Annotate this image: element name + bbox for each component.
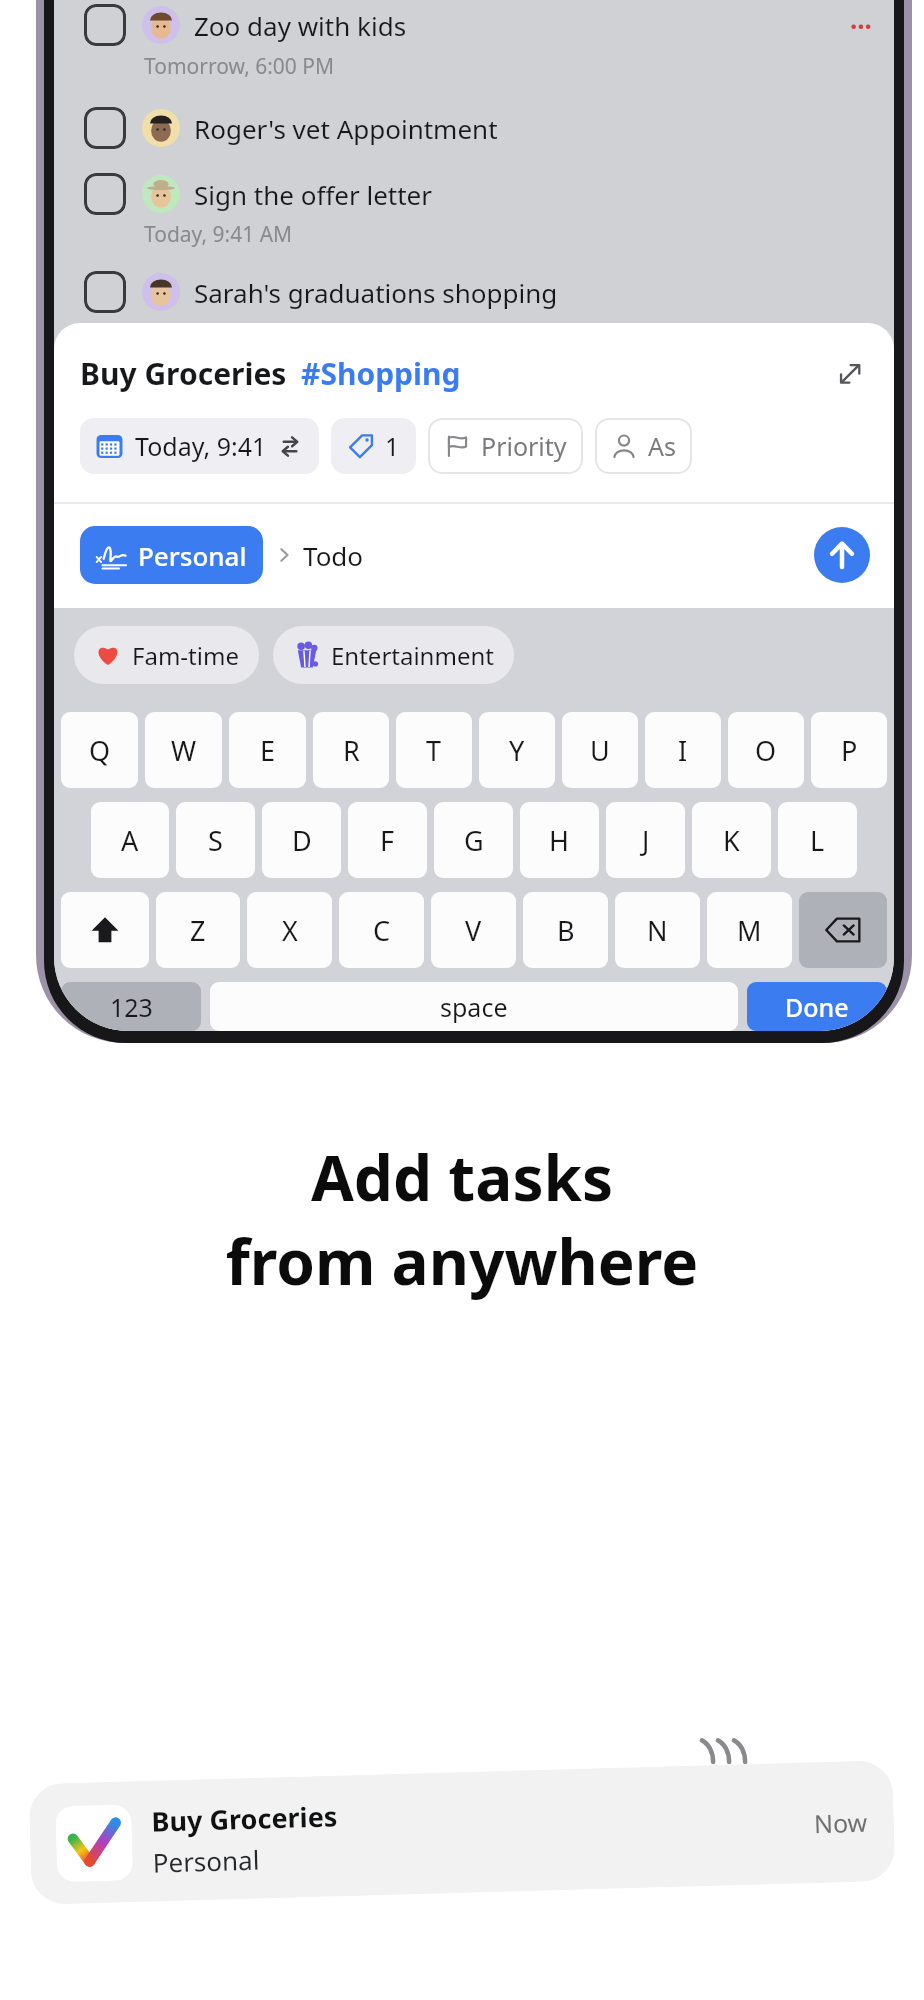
staticText: Sarah's graduations shopping — [194, 275, 558, 310]
staticText: 1 — [385, 429, 400, 463]
staticText: O — [755, 732, 777, 769]
button[interactable]: Expand — [830, 354, 870, 394]
button[interactable]: M — [707, 892, 792, 968]
staticText: Roger's vet Appointment — [194, 111, 872, 146]
staticText: Done — [785, 990, 849, 1024]
staticText: Add tasks from anywhere — [0, 1135, 924, 1303]
button[interactable]: B — [523, 892, 608, 968]
button[interactable]: A — [91, 802, 169, 878]
button[interactable]: C — [339, 892, 424, 968]
button[interactable]: Backspace — [799, 892, 887, 968]
staticText: Personal — [138, 538, 247, 573]
staticText: Todo — [303, 538, 364, 573]
staticText: T — [426, 732, 442, 769]
button[interactable]: Add task — [814, 527, 870, 583]
staticText: D — [292, 822, 312, 859]
button[interactable]: T — [396, 712, 472, 788]
button[interactable]: Shift — [61, 892, 149, 968]
button[interactable]: G — [434, 802, 513, 878]
button[interactable]: Complete Roger's vet Appointment — [54, 107, 894, 149]
button[interactable]: Buy Groceries — [28, 1760, 895, 1905]
button[interactable]: S — [176, 802, 255, 878]
staticText: H — [549, 822, 570, 859]
staticText: Zoo day with kids — [194, 8, 850, 43]
button[interactable]: U — [562, 712, 638, 788]
button[interactable]: P — [811, 712, 887, 788]
staticText: G — [464, 822, 484, 859]
staticText: C — [373, 912, 391, 949]
staticText: A — [121, 822, 139, 859]
button[interactable]: K — [692, 802, 771, 878]
button[interactable]: Z — [156, 892, 240, 968]
staticText: Q — [89, 732, 111, 769]
button[interactable]: Complete Sarah's graduations shopping — [84, 271, 126, 313]
staticText: E — [260, 732, 276, 769]
button[interactable]: R — [313, 712, 389, 788]
button[interactable]: Priority — [428, 418, 583, 474]
button[interactable]: Personal — [80, 526, 263, 584]
staticText: Buy Groceries — [151, 1797, 338, 1840]
staticText: Now — [813, 1805, 868, 1840]
button[interactable]: Complete Roger's vet Appointment — [84, 107, 126, 149]
button[interactable]: 1 — [331, 418, 416, 474]
staticText: space — [440, 990, 508, 1024]
staticText: S — [208, 822, 223, 859]
button[interactable]: Complete Sign the offer letter — [54, 173, 894, 249]
staticText: Today, 9:41 AM — [144, 220, 293, 249]
staticText: R — [343, 732, 360, 769]
staticText: Buy Groceries — [80, 353, 287, 394]
button[interactable]: O — [728, 712, 804, 788]
staticText: X — [282, 912, 298, 949]
staticText: Entertainment — [331, 639, 494, 672]
staticText: L — [810, 822, 825, 859]
button[interactable]: X — [247, 892, 332, 968]
staticText: 123 — [110, 990, 153, 1024]
staticText: I — [678, 732, 688, 769]
staticText: Sign the offer letter — [194, 177, 872, 212]
button[interactable]: V — [431, 892, 516, 968]
button[interactable]: Today, 9:41 — [80, 418, 319, 474]
staticText: P — [841, 732, 858, 769]
button[interactable]: 123 — [61, 982, 201, 1031]
button[interactable]: Fam-time — [74, 626, 259, 684]
staticText: Priority — [481, 429, 567, 463]
button[interactable]: I — [645, 712, 721, 788]
staticText: ··· — [850, 8, 872, 43]
button[interactable]: H — [520, 802, 599, 878]
staticText: B — [557, 912, 575, 949]
button[interactable]: L — [778, 802, 857, 878]
button[interactable]: Complete Sign the offer letter — [84, 173, 126, 215]
button[interactable]: Y — [479, 712, 555, 788]
staticText: As — [648, 429, 676, 463]
staticText: F — [380, 822, 395, 859]
staticText: M — [737, 912, 762, 949]
button[interactable]: As — [595, 418, 692, 474]
button[interactable]: F — [348, 802, 427, 878]
button[interactable]: N — [615, 892, 700, 968]
staticText: J — [642, 822, 650, 859]
button[interactable]: Entertainment — [273, 626, 514, 684]
button[interactable]: D — [262, 802, 341, 878]
button[interactable]: J — [606, 802, 685, 878]
staticText: K — [723, 822, 740, 859]
staticText: Fam-time — [132, 639, 239, 672]
button[interactable]: W — [145, 712, 222, 788]
staticText: U — [590, 732, 610, 769]
button[interactable]: Q — [61, 712, 138, 788]
staticText: Tomorrow, 6:00 PM — [144, 52, 335, 81]
button[interactable]: E — [229, 712, 306, 788]
staticText: W — [171, 732, 197, 769]
staticText: V — [465, 912, 482, 949]
staticText: Z — [190, 912, 206, 949]
staticText: Personal — [152, 1842, 260, 1880]
staticText: Today, 9:41 — [135, 429, 267, 463]
button[interactable]: Done — [747, 982, 887, 1031]
staticText: Y — [509, 732, 525, 769]
button[interactable]: Complete Zoo day with kids — [84, 4, 126, 46]
staticText: N — [647, 912, 668, 949]
staticText: #Shopping — [301, 353, 461, 394]
button[interactable]: space — [210, 982, 738, 1031]
